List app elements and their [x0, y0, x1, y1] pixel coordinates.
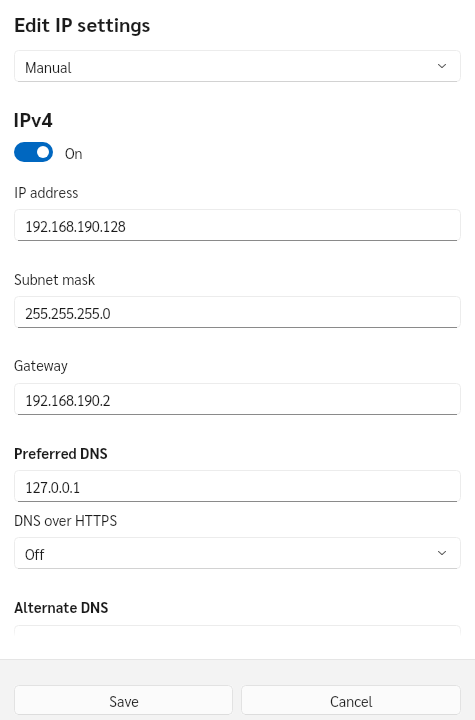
- staticText: Alternate DNS: [14, 597, 109, 616]
- button[interactable]: Off: [14, 537, 461, 569]
- staticText: Preferred DNS: [14, 443, 108, 462]
- button[interactable]: 192.168.190.2: [14, 383, 461, 415]
- staticText: Subnet mask: [14, 269, 95, 288]
- button[interactable]: Cancel: [241, 685, 461, 715]
- staticText: 127.0.0.1: [25, 477, 80, 496]
- staticText: Manual: [25, 57, 72, 76]
- other: Open list: [435, 546, 449, 560]
- staticText: DNS over HTTPS: [14, 510, 118, 529]
- staticText: On: [65, 143, 83, 162]
- staticText: 192.168.190.128: [25, 216, 126, 235]
- button[interactable]: Save: [14, 685, 233, 715]
- button[interactable]: [14, 625, 461, 657]
- staticText: IPv4: [13, 106, 53, 132]
- button[interactable]: 192.168.190.128: [14, 209, 461, 241]
- button[interactable]: 127.0.0.1: [14, 470, 461, 502]
- staticText: Off: [25, 544, 45, 563]
- staticText: Gateway: [14, 355, 68, 374]
- staticText: 192.168.190.2: [25, 390, 111, 409]
- button[interactable]: Manual: [14, 50, 461, 82]
- button[interactable]: 255.255.255.0: [14, 296, 461, 328]
- staticText: Cancel: [330, 691, 373, 710]
- other: Open list: [435, 59, 449, 73]
- staticText: Save: [109, 691, 139, 710]
- staticText: IP address: [14, 182, 79, 201]
- button[interactable]: IPv4 enabled: [14, 142, 53, 162]
- staticText: 255.255.255.0: [25, 303, 111, 322]
- staticText: Edit IP settings: [14, 11, 151, 37]
